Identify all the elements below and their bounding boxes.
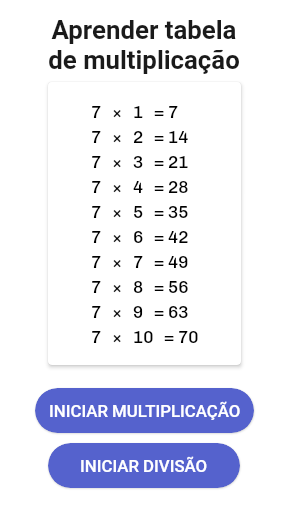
staticText: 42	[168, 227, 189, 247]
button[interactable]: INICIAR MULTIPLICAÇÃO	[35, 388, 254, 433]
staticText: 14	[168, 127, 189, 147]
staticText: ×	[112, 227, 123, 247]
staticText: 4	[133, 177, 144, 197]
staticText: 5	[133, 202, 144, 222]
staticText: 7	[91, 302, 102, 322]
staticText: 7	[91, 177, 102, 197]
staticText: =	[154, 127, 165, 147]
button[interactable]: INICIAR DIVISÃO	[48, 443, 240, 488]
staticText: 7	[91, 227, 102, 247]
staticText: Aprender tabela de multiplicação	[0, 15, 288, 75]
staticText: =	[154, 302, 165, 322]
staticText: 1	[133, 102, 144, 122]
staticText: 7	[133, 252, 144, 272]
staticText: 7	[91, 102, 102, 122]
staticText: ×	[112, 152, 123, 172]
staticText: 56	[168, 277, 189, 297]
staticText: 3	[133, 152, 144, 172]
staticText: INICIAR MULTIPLICAÇÃO	[49, 401, 241, 421]
staticText: =	[154, 252, 165, 272]
staticText: ×	[112, 252, 123, 272]
staticText: 7	[91, 277, 102, 297]
staticText: 35	[168, 202, 189, 222]
staticText: 49	[168, 252, 189, 272]
staticText: 7	[168, 102, 179, 122]
staticText: ×	[112, 302, 123, 322]
staticText: =	[154, 177, 165, 197]
staticText: INICIAR DIVISÃO	[80, 456, 208, 476]
staticText: 7	[91, 152, 102, 172]
staticText: 6	[133, 227, 144, 247]
staticText: ×	[112, 327, 123, 347]
staticText: =	[154, 227, 165, 247]
staticText: 7	[91, 327, 102, 347]
staticText: ×	[112, 127, 123, 147]
staticText: ×	[112, 277, 123, 297]
staticText: 7	[91, 202, 102, 222]
staticText: ×	[112, 177, 123, 197]
staticText: =	[154, 152, 165, 172]
staticText: =	[154, 277, 165, 297]
staticText: =	[154, 102, 165, 122]
staticText: 10	[133, 327, 154, 347]
staticText: 2	[133, 127, 144, 147]
staticText: 28	[168, 177, 189, 197]
staticText: ×	[112, 202, 123, 222]
staticText: =	[164, 327, 175, 347]
staticText: 8	[133, 277, 144, 297]
staticText: 7	[91, 252, 102, 272]
staticText: 7	[91, 127, 102, 147]
staticText: =	[154, 202, 165, 222]
staticText: 21	[168, 152, 189, 172]
staticText: 70	[178, 327, 199, 347]
staticText: 9	[133, 302, 144, 322]
staticText: ×	[112, 102, 123, 122]
staticText: 63	[168, 302, 189, 322]
